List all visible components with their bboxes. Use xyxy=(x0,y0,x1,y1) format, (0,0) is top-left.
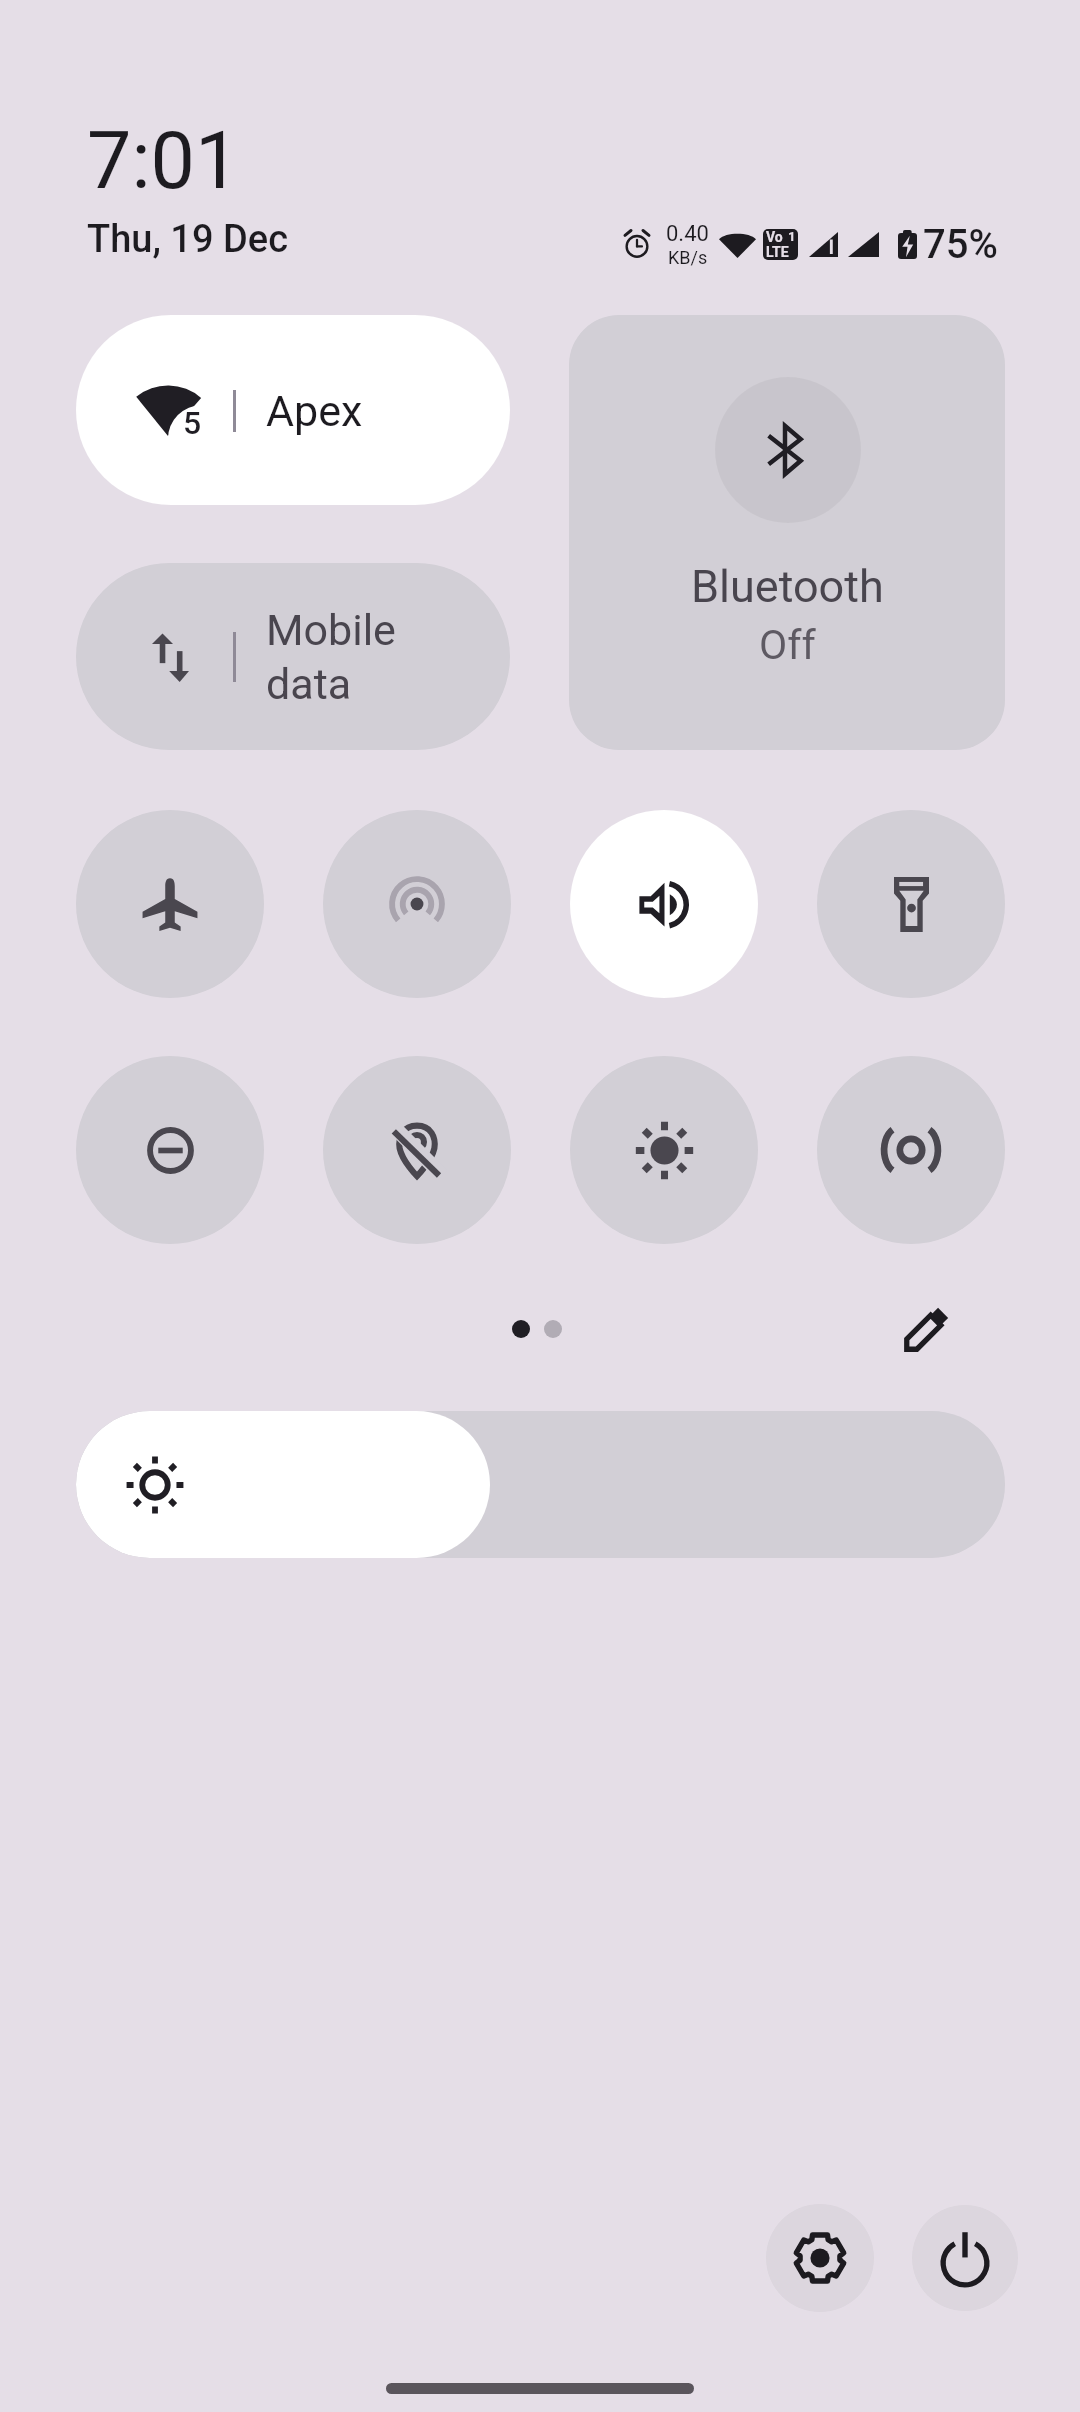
button[interactable]: Mobile data xyxy=(76,563,510,750)
staticText: Thu, 19 Dec xyxy=(87,217,288,262)
button[interactable]: Location off xyxy=(323,1056,511,1244)
staticText: Apex xyxy=(266,386,363,436)
button[interactable]: Flashlight xyxy=(817,810,1005,998)
staticText: 75% xyxy=(923,221,998,268)
button[interactable]: Auto brightness xyxy=(570,1056,758,1244)
staticText: 7:01 xyxy=(87,115,240,208)
staticText: Bluetooth xyxy=(691,560,884,613)
button[interactable]: Sound xyxy=(570,810,758,998)
staticText: LTE xyxy=(766,244,789,260)
button[interactable]: 5 xyxy=(76,315,510,505)
button[interactable]: Brightness xyxy=(76,1411,1005,1558)
button[interactable]: Airplane mode xyxy=(76,810,264,998)
button[interactable]: Do not disturb xyxy=(76,1056,264,1244)
staticText: 0.40 xyxy=(666,221,709,247)
staticText: 1 xyxy=(788,229,796,244)
staticText: Mobile data xyxy=(266,605,396,709)
button[interactable]: Nearby share xyxy=(817,1056,1005,1244)
button[interactable]: Bluetooth xyxy=(569,315,1005,750)
staticText: Off xyxy=(759,621,816,669)
staticText: KB/s xyxy=(668,247,708,268)
button[interactable]: Edit tiles xyxy=(889,1292,965,1366)
staticText: 5 xyxy=(183,404,202,442)
staticText: Vo xyxy=(766,229,783,245)
button[interactable]: Power xyxy=(912,2205,1018,2311)
button[interactable]: Hotspot xyxy=(323,810,511,998)
button[interactable]: Settings xyxy=(766,2204,874,2312)
